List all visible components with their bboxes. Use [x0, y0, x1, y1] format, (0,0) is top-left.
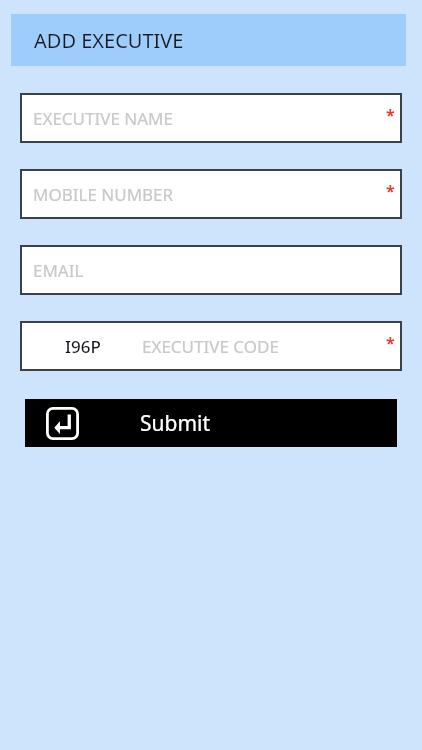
staticText: Submit	[140, 409, 211, 438]
staticText: EXECUTIVE NAME	[33, 107, 173, 130]
staticText: EXECUTIVE CODE	[142, 335, 279, 358]
other: Submit	[46, 407, 79, 440]
button[interactable]: I96P	[20, 321, 402, 371]
button[interactable]: Submit	[25, 399, 397, 447]
staticText: *	[386, 180, 395, 202]
button[interactable]: EMAIL	[20, 245, 402, 295]
staticText: I96P	[65, 335, 101, 358]
staticText: *	[386, 104, 395, 126]
button[interactable]: EXECUTIVE NAME	[20, 93, 402, 143]
button[interactable]: MOBILE NUMBER	[20, 169, 402, 219]
staticText: *	[386, 332, 395, 354]
staticText: EMAIL	[33, 259, 84, 282]
button[interactable]: ADD EXECUTIVE	[11, 14, 406, 66]
staticText: ADD EXECUTIVE	[34, 27, 184, 54]
staticText: MOBILE NUMBER	[33, 183, 174, 206]
